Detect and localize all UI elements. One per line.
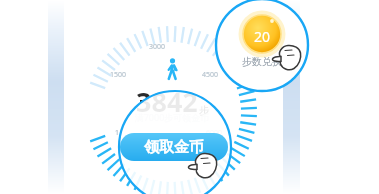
staticText: 满7000步可领金币	[112, 111, 232, 123]
staticText: 3842	[136, 83, 198, 120]
staticText: 1	[103, 128, 131, 138]
staticText: 6000	[200, 128, 228, 138]
staticText: 步	[199, 104, 209, 117]
staticText: 20	[242, 27, 282, 46]
staticText: 领取金币	[144, 138, 204, 157]
staticText: 1500	[104, 70, 132, 80]
button[interactable]: Tap to collect coins	[186, 145, 228, 187]
staticText: 4500	[196, 70, 224, 80]
staticText: 步数兑换	[242, 55, 282, 68]
button[interactable]: 步数兑换	[232, 52, 292, 70]
button[interactable]: 领取金币	[120, 133, 228, 161]
button[interactable]: 领取金币	[120, 133, 228, 161]
button[interactable]: Tap to exchange steps	[270, 37, 312, 79]
staticText: 领取金币	[144, 138, 204, 157]
staticText: 3000	[143, 42, 171, 52]
